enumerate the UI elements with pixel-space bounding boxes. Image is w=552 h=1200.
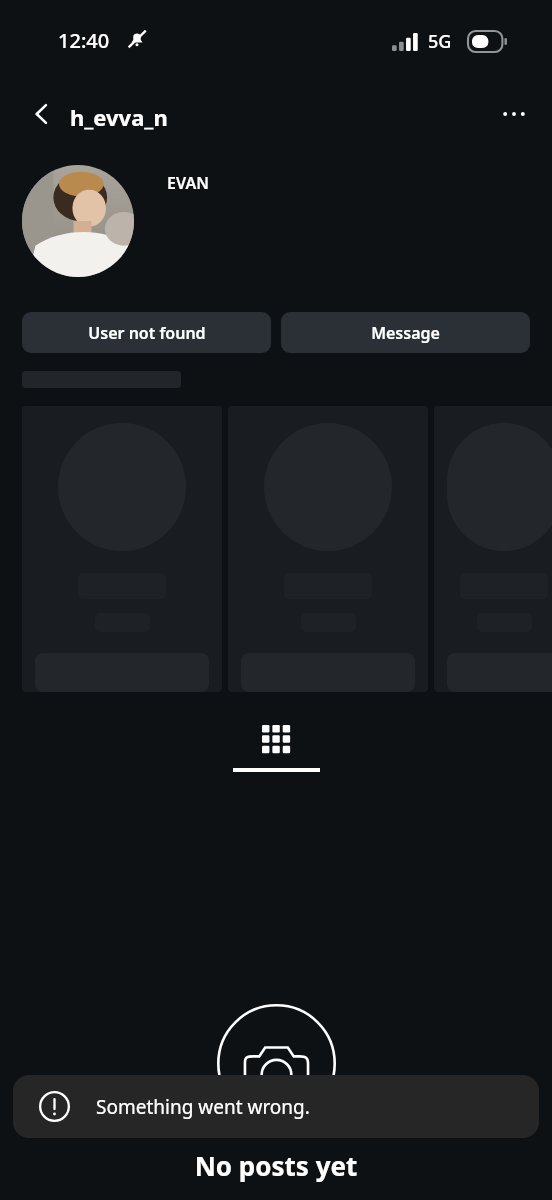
staticText: h_evva_n xyxy=(70,102,168,132)
button[interactable] xyxy=(22,406,222,692)
button[interactable]: Message xyxy=(281,312,530,353)
button[interactable]: Something went wrong. xyxy=(13,1075,539,1138)
staticText: Message xyxy=(371,322,440,344)
staticText: 5G xyxy=(428,29,452,54)
button[interactable] xyxy=(434,406,552,692)
button[interactable]: Back xyxy=(18,90,66,138)
staticText: Something went wrong. xyxy=(96,1094,310,1120)
button[interactable]: Profile photo xyxy=(22,165,134,277)
staticText: EVAN xyxy=(167,172,209,194)
staticText: No posts yet xyxy=(0,1148,552,1183)
button[interactable]: More options xyxy=(490,90,538,138)
staticText: 12:40 xyxy=(58,27,110,54)
button[interactable]: Posts grid xyxy=(0,714,552,774)
button[interactable]: User not found xyxy=(22,312,271,353)
button[interactable] xyxy=(228,406,428,692)
staticText: User not found xyxy=(88,322,206,344)
